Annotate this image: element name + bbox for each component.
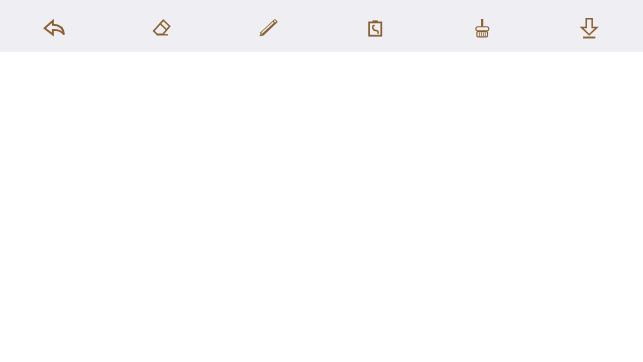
button[interactable]: Erase (108, 0, 215, 52)
button[interactable]: Clean (429, 0, 536, 52)
button[interactable]: Clipboard (322, 0, 429, 52)
button[interactable]: Undo (0, 0, 108, 52)
button[interactable]: Download (536, 0, 643, 52)
button[interactable]: Draw (215, 0, 322, 52)
